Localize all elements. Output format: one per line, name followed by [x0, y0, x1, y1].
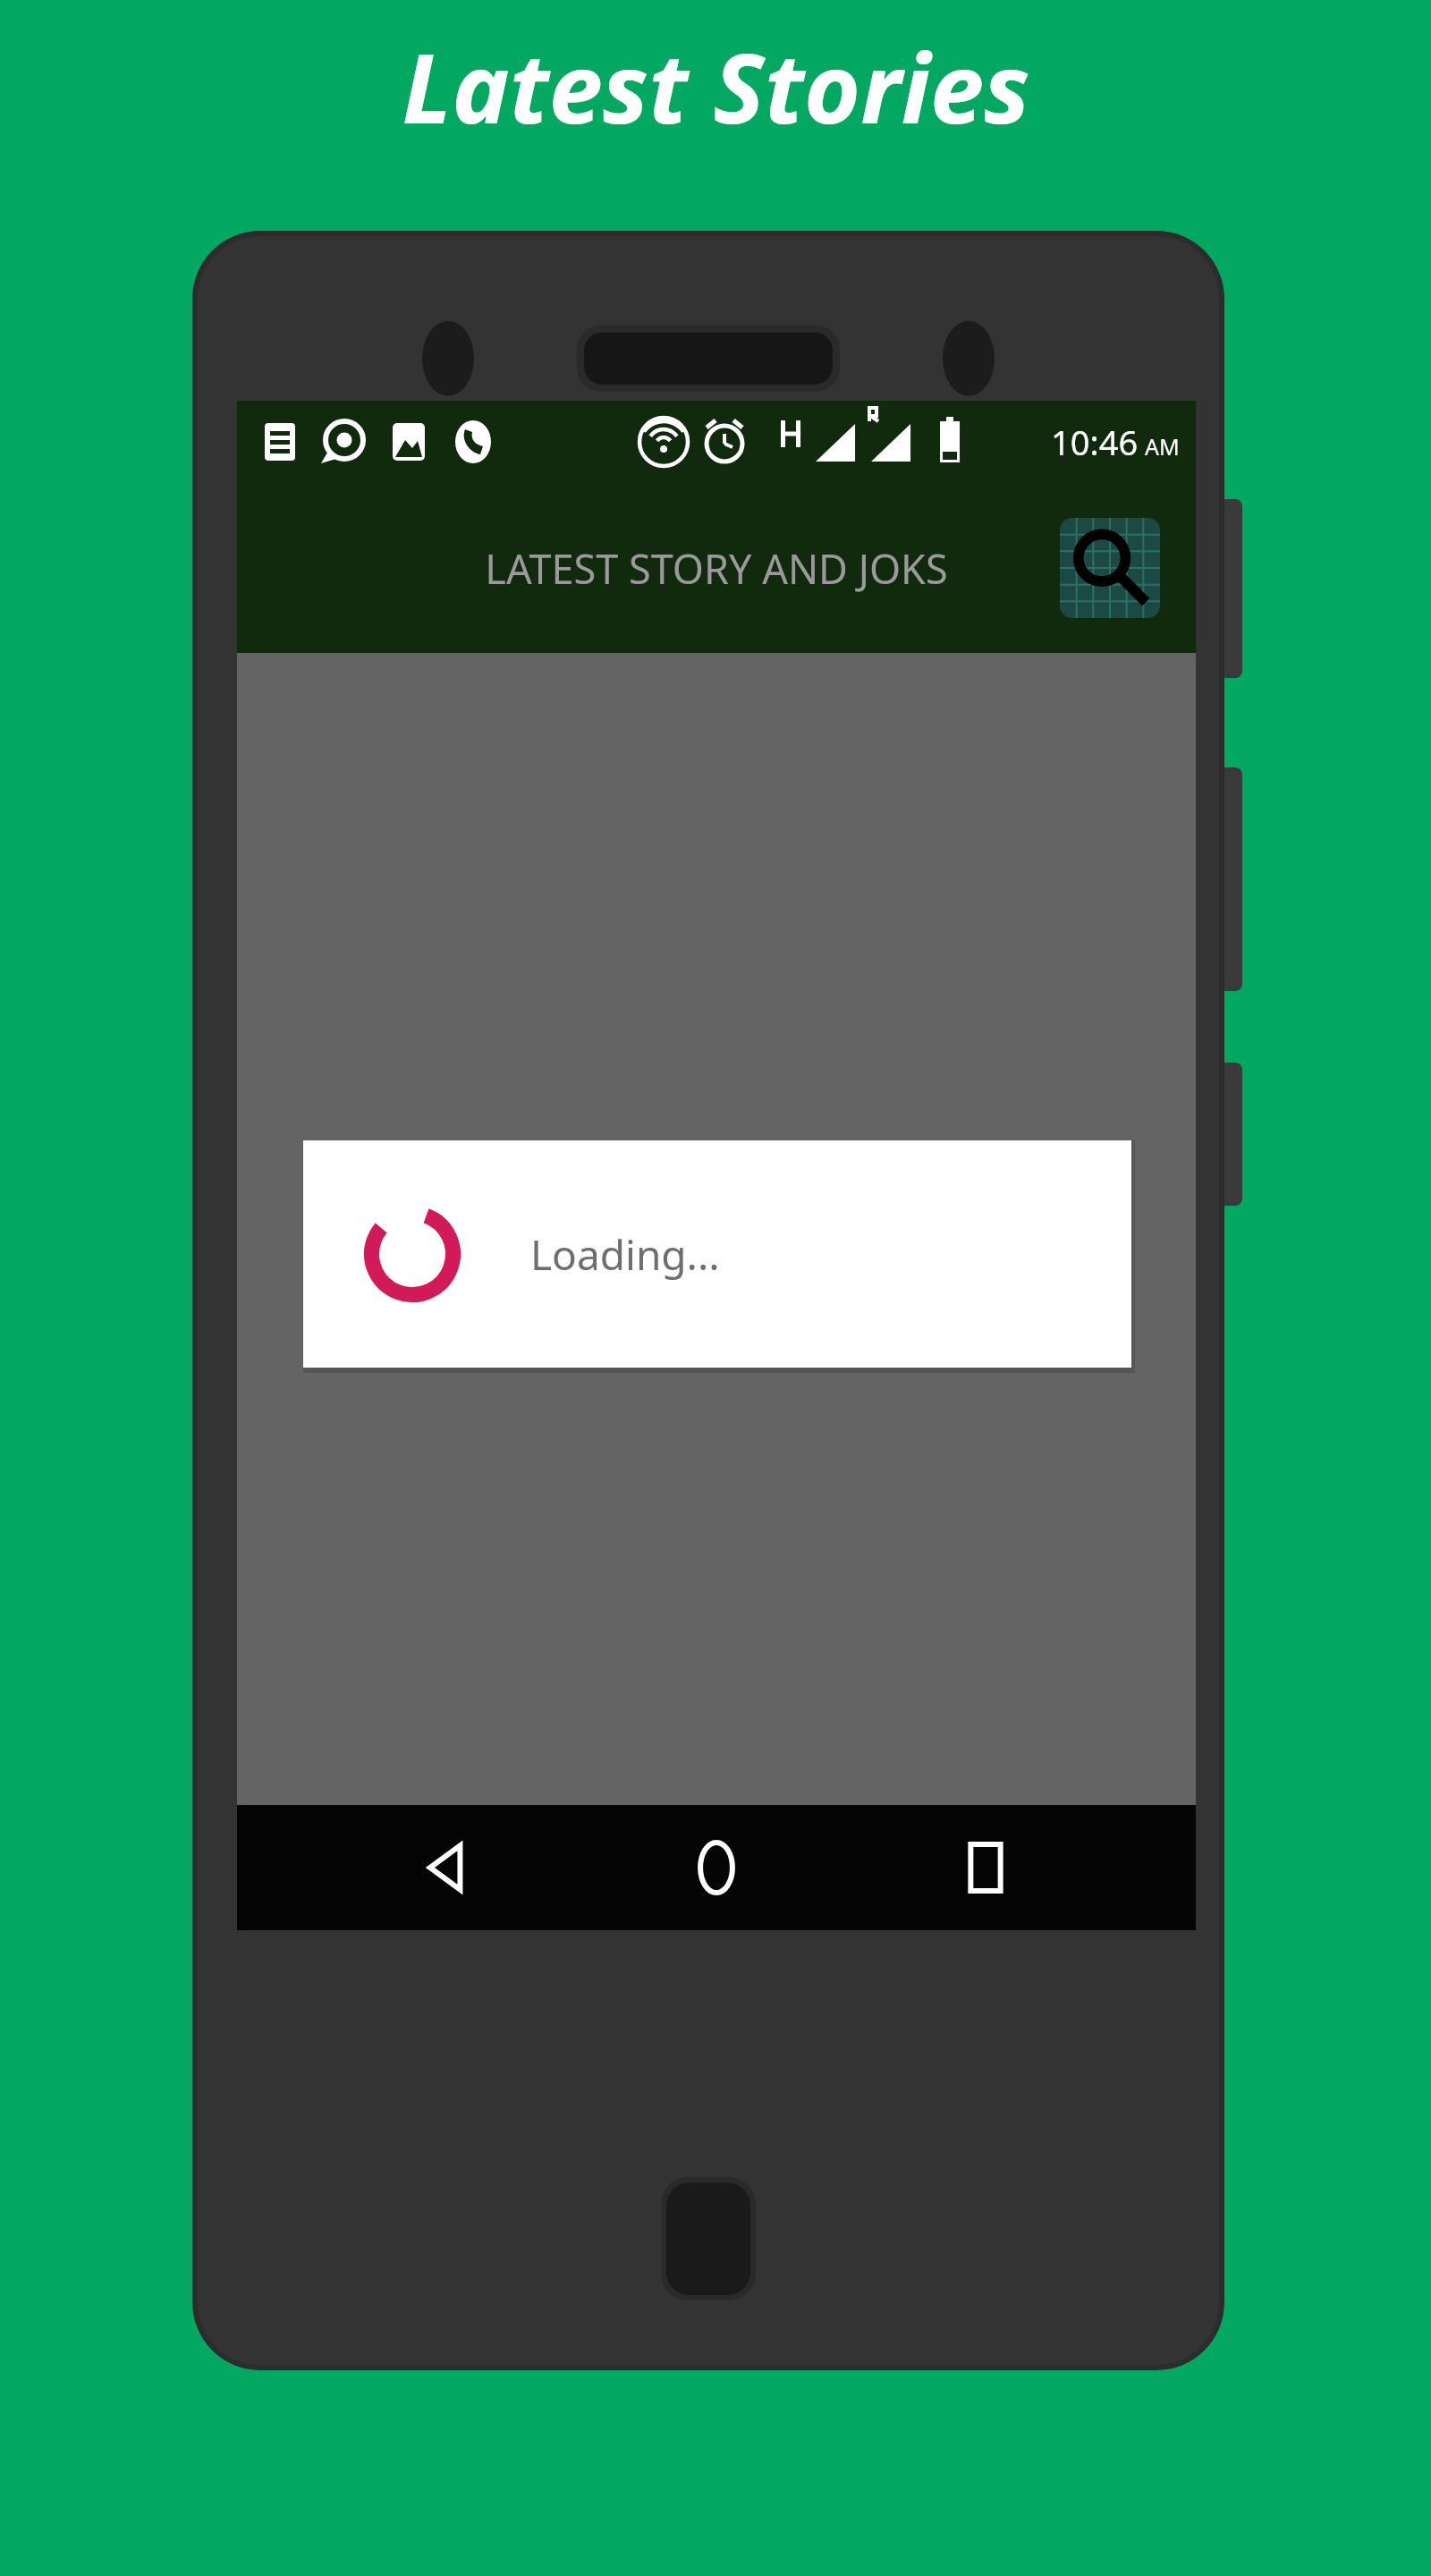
staticText: Loading... — [530, 1226, 720, 1283]
button[interactable]: Back — [390, 1809, 506, 1926]
staticText: Latest Stories — [402, 21, 1030, 152]
staticText: LATEST STORY AND JOKS — [485, 541, 948, 596]
button[interactable]: Search — [1060, 518, 1160, 618]
staticText: 10:46 — [1051, 419, 1139, 465]
button[interactable]: Recent apps — [927, 1809, 1044, 1926]
staticText: AM — [1145, 431, 1180, 462]
button[interactable]: Home — [658, 1809, 775, 1926]
